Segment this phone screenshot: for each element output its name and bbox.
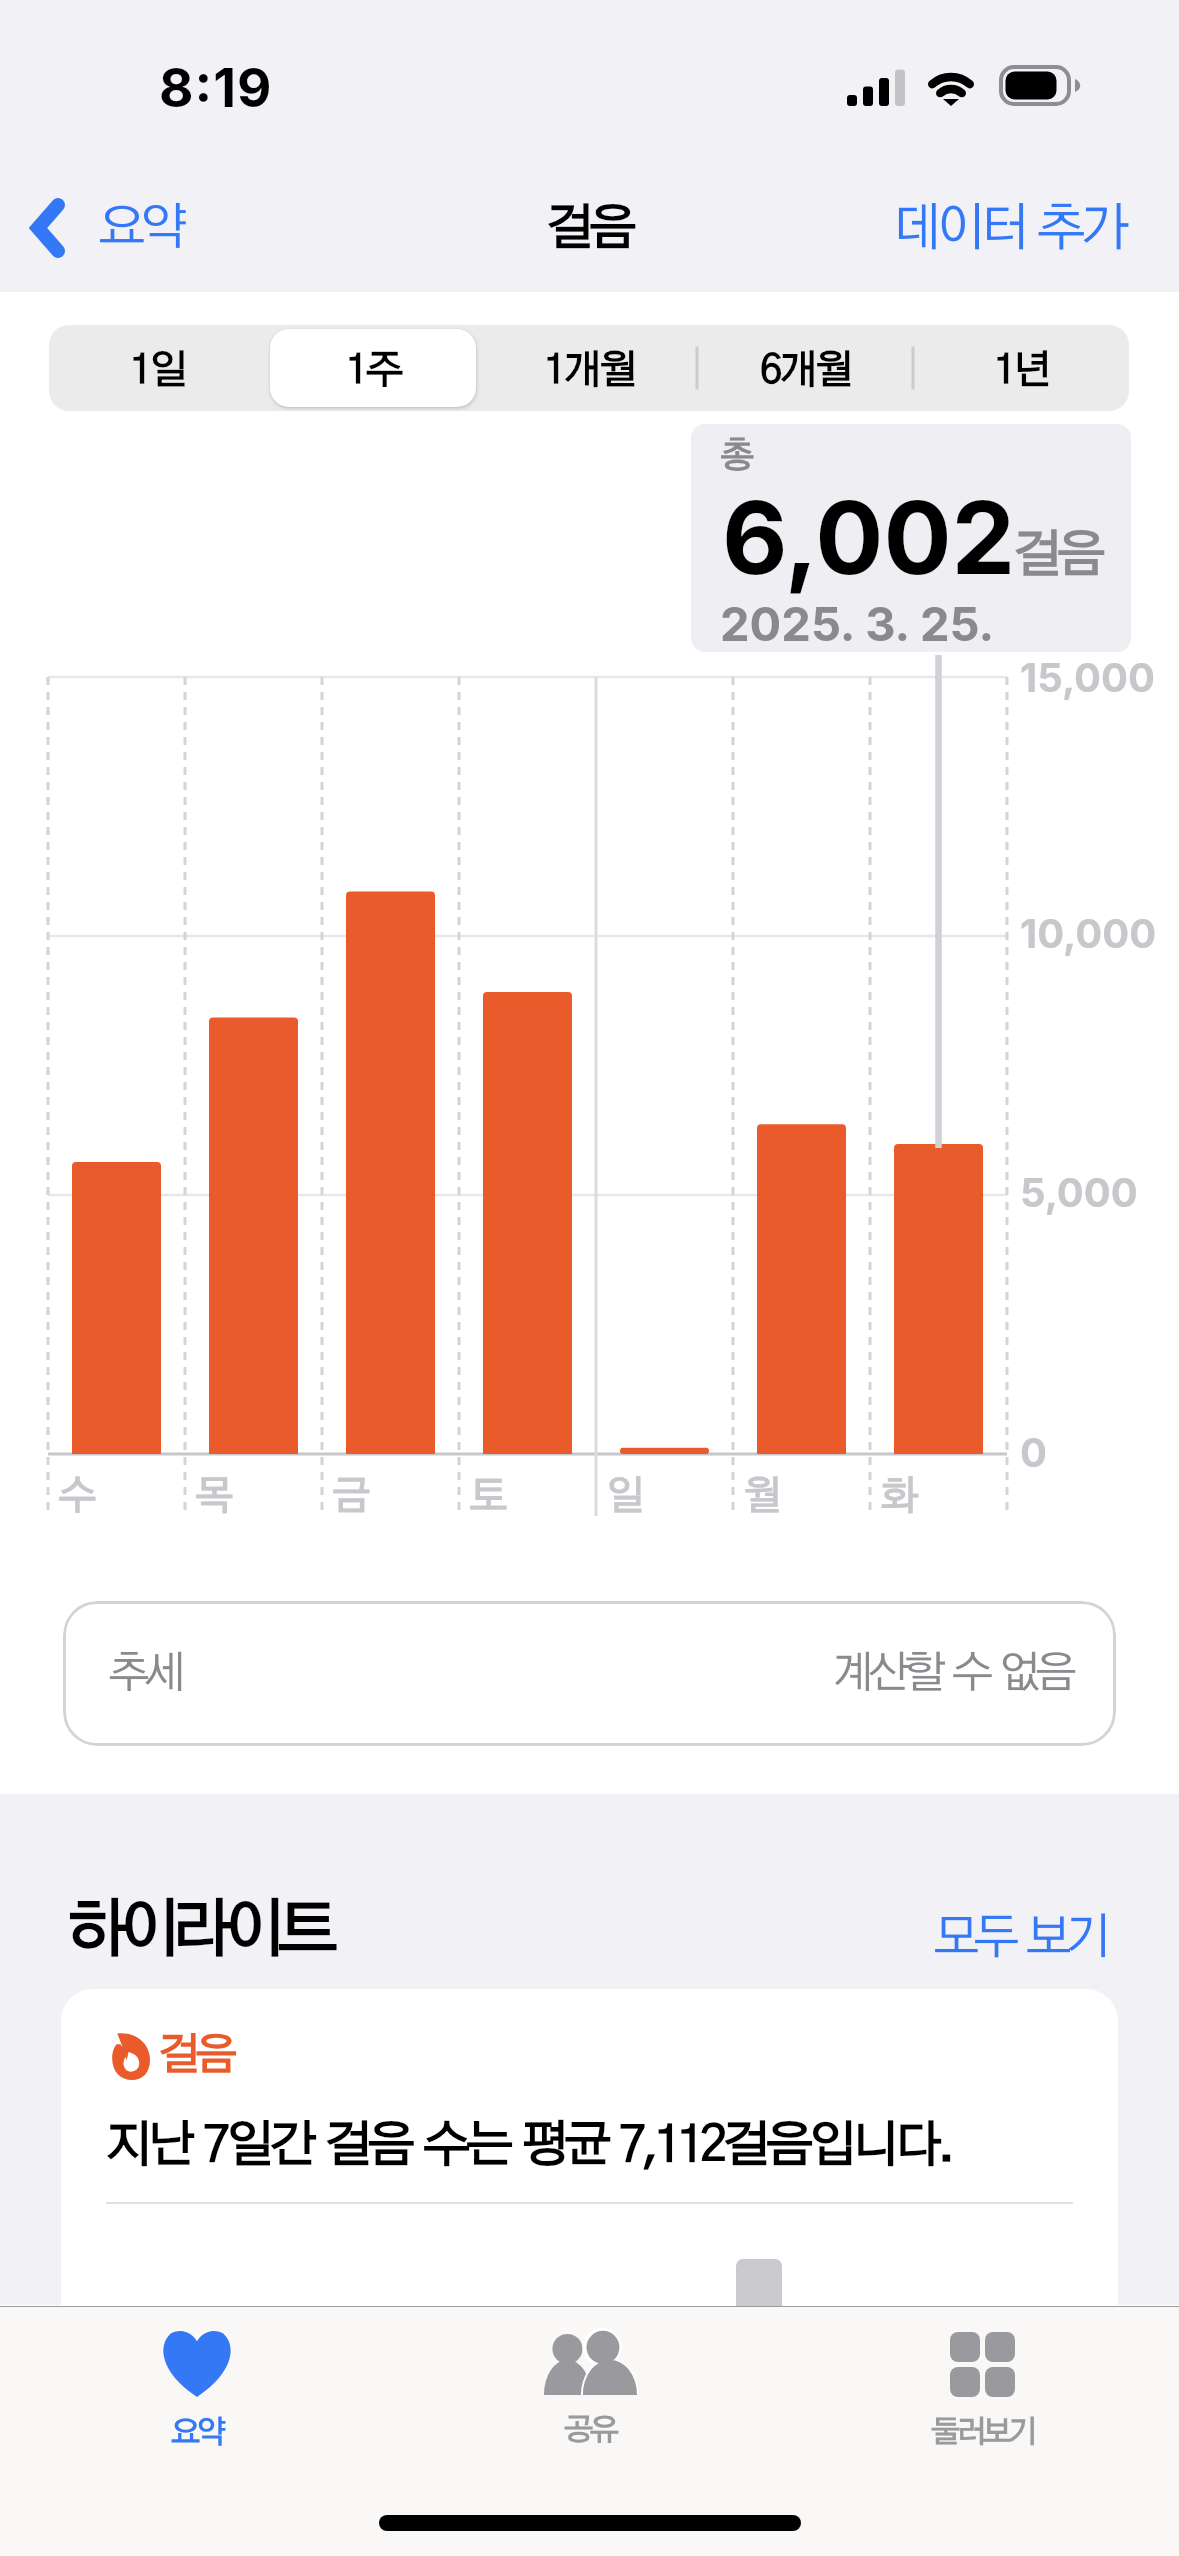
staticText: 지난 7일간 걸음 수는 평균 7,112걸음입니다. (105, 2121, 951, 2171)
staticText: 하이라이트 (67, 1899, 330, 1963)
button[interactable]: 1년 (913, 325, 1129, 411)
staticText: 금 (332, 1477, 367, 1517)
button[interactable]: Back (21, 183, 191, 273)
staticText: 1개월 (544, 351, 635, 391)
staticText: 일 (606, 1477, 641, 1517)
button[interactable] (61, 1989, 1118, 2319)
staticText: 1일 (130, 351, 185, 391)
staticText: 추세 (108, 1652, 181, 1696)
staticText: 둘러보기 (931, 2417, 1035, 2448)
staticText: 화 (880, 1477, 915, 1517)
staticText: 데이터 추가 (892, 204, 1125, 256)
staticText: 총 (720, 438, 751, 474)
staticText: 1년 (994, 351, 1049, 391)
button[interactable]: 1일 (49, 325, 265, 411)
staticText: 15,000 (1020, 653, 1155, 701)
staticText: 2025. 3. 25. (720, 595, 995, 652)
button[interactable]: Sharing (393, 2331, 786, 2446)
staticText: 공유 (564, 2415, 616, 2446)
staticText: 걸음 (158, 2034, 233, 2078)
staticText: 토 (469, 1477, 504, 1517)
staticText: 요약 (98, 203, 183, 253)
button[interactable]: 추세 (63, 1601, 1116, 1746)
staticText: 8:19 (159, 56, 273, 120)
staticText: 요약 (171, 2417, 223, 2448)
button[interactable]: 모두 보기 (925, 1906, 1114, 1971)
button[interactable]: 1주 (265, 325, 481, 411)
button[interactable]: Browse (786, 2331, 1179, 2448)
staticText: 모두 보기 (933, 1914, 1106, 1963)
other: Back (29, 191, 67, 265)
staticText: 계산할 수 없음 (832, 1652, 1072, 1696)
staticText: 5,000 (1020, 1168, 1138, 1216)
staticText: 1주 (346, 351, 401, 391)
staticText: 목 (195, 1477, 230, 1517)
staticText: 10,000 (1020, 909, 1157, 957)
staticText: 6개월 (760, 351, 851, 391)
staticText: 수 (58, 1477, 93, 1517)
button[interactable]: 6개월 (697, 325, 913, 411)
staticText: 0 (1020, 1428, 1047, 1476)
staticText: 걸음 (1013, 530, 1102, 581)
staticText: 월 (743, 1477, 778, 1517)
button[interactable]: 데이터 추가 (882, 194, 1135, 266)
staticText: 걸음 (546, 204, 633, 254)
button[interactable]: Summary (0, 2331, 393, 2448)
button[interactable]: 1개월 (481, 325, 697, 411)
staticText: 6,002 (722, 476, 1016, 598)
